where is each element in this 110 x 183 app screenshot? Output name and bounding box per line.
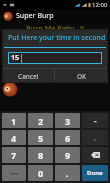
staticText: Put Here your time in second <box>8 33 106 43</box>
staticText: 8 <box>38 149 44 161</box>
button[interactable]: Minus <box>82 113 108 128</box>
staticText: Done <box>87 169 103 177</box>
button[interactable]: 3 <box>55 113 80 128</box>
button[interactable]: 1 <box>2 113 26 128</box>
staticText: , <box>94 133 96 143</box>
button[interactable]: . <box>55 165 80 181</box>
button[interactable]: 7 <box>2 147 26 163</box>
staticText: 12:00 <box>92 1 108 9</box>
staticText: - <box>94 115 97 126</box>
staticText: 3 <box>65 115 71 127</box>
button[interactable]: 9 <box>55 147 80 163</box>
button[interactable]: Comma <box>82 130 108 145</box>
staticText: Burp Me Baby...!! <box>0 24 110 34</box>
button[interactable]: 6 <box>55 130 80 145</box>
button[interactable]: 8 <box>28 147 53 163</box>
staticText: 7 <box>11 149 17 161</box>
button[interactable]: 0 <box>28 165 53 181</box>
button[interactable]: 5 <box>28 130 53 145</box>
button[interactable]: OK <box>55 69 108 83</box>
staticText: 2 <box>38 115 44 127</box>
staticText: 6 <box>65 132 71 144</box>
button[interactable]: Delete <box>82 147 108 163</box>
staticText: 0 <box>38 167 44 179</box>
button[interactable]: 2 <box>28 113 53 128</box>
staticText: 15 <box>11 53 20 63</box>
button[interactable]: Tab <box>2 165 26 181</box>
staticText: Cancel <box>18 72 39 81</box>
button[interactable]: 4 <box>2 130 26 145</box>
staticText: 4 <box>11 132 17 144</box>
button[interactable]: Cancel <box>2 69 54 83</box>
button[interactable]: 15 <box>8 52 102 64</box>
staticText: 1 <box>11 115 17 127</box>
staticText: Super Burp <box>16 11 54 21</box>
staticText: . <box>66 167 69 179</box>
staticText: 5 <box>38 132 44 144</box>
button[interactable]: Done <box>82 165 108 181</box>
staticText: OK <box>77 72 87 81</box>
staticText: 9 <box>65 149 71 161</box>
